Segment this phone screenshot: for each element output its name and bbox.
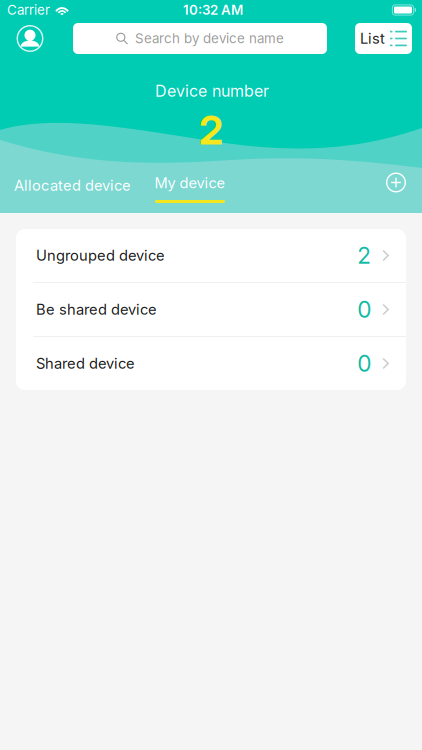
button[interactable]: List [355,23,412,54]
staticText: 10:32 AM [183,2,243,18]
staticText: 2 [357,242,371,269]
staticText: Allocated device [14,177,131,194]
button[interactable]: Profile [10,18,50,58]
staticText: Device number [155,81,269,101]
staticText: Shared device [36,355,135,372]
button[interactable]: Add device [379,165,413,199]
button[interactable]: Allocated device [7,168,137,202]
staticText: 0 [357,296,371,323]
staticText: 0 [357,350,371,377]
staticText: Carrier [7,2,50,18]
staticText: Be shared device [36,301,157,318]
button[interactable]: My device [148,167,232,207]
button[interactable]: Ungrouped device [16,229,406,282]
staticText: Ungrouped device [36,247,165,264]
staticText: List [360,30,385,47]
staticText: My device [154,174,225,192]
staticText: Search by device name [135,30,284,46]
button[interactable]: Be shared device [16,283,406,336]
button[interactable]: Shared device [16,337,406,390]
staticText: 2 [199,106,223,154]
